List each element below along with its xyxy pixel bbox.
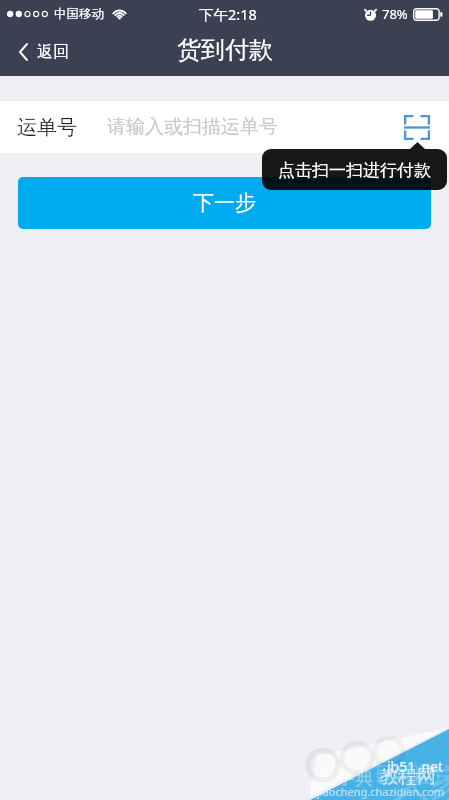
staticText: 78% [382, 5, 408, 23]
staticText: 点击扫一扫进行付款 [278, 160, 431, 181]
staticText: 货到付款 [177, 35, 273, 65]
staticText: 中国移动 [54, 6, 104, 22]
staticText: 查字典 [317, 766, 374, 790]
button[interactable]: 返回 [0, 28, 83, 76]
staticText: 下午2:18 [199, 4, 257, 24]
staticText: 运单号 [17, 115, 77, 140]
button[interactable]: 下一步 [18, 177, 431, 229]
staticText: 教程网 [379, 765, 436, 789]
staticText: 大家 [392, 760, 449, 800]
staticText: 请输入或扫描运单号 [107, 115, 278, 139]
staticText: jb51_net [387, 757, 444, 776]
staticText: 下一步 [193, 190, 256, 216]
button[interactable]: 扫一扫 [398, 108, 436, 146]
staticText: jiaocheng.chazidian.com [317, 784, 445, 799]
staticText: 返回 [37, 42, 69, 62]
